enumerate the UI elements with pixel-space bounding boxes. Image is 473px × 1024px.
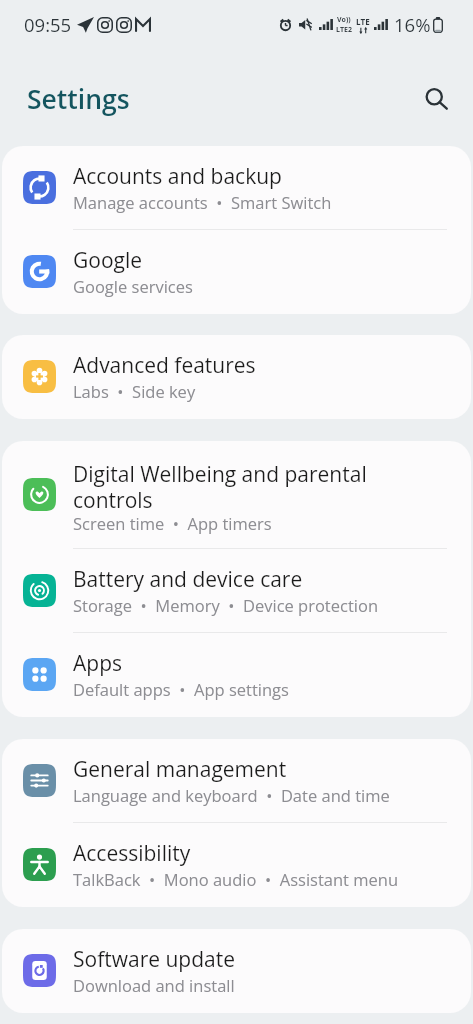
staticText: Download and install — [73, 974, 235, 996]
staticText: 09:55 — [24, 12, 72, 37]
staticText: Vo)) — [337, 15, 351, 25]
button[interactable]: Battery and device care — [2, 549, 471, 633]
staticText: Settings — [27, 81, 130, 117]
staticText: LTE — [356, 16, 370, 27]
button[interactable]: Advanced features — [2, 335, 471, 419]
staticText: Screen time • App timers — [73, 512, 272, 534]
staticText: Apps — [73, 649, 122, 678]
staticText: Default apps • App settings — [73, 678, 289, 700]
button[interactable]: Apps — [2, 633, 471, 717]
staticText: Digital Wellbeing and parental controls — [73, 460, 367, 515]
staticText: General management — [73, 755, 287, 784]
staticText: Google — [73, 246, 143, 275]
staticText: Battery and device care — [73, 565, 303, 594]
button[interactable]: Accounts and backup — [2, 146, 471, 230]
staticText: Manage accounts • Smart Switch — [73, 191, 332, 213]
staticText: Labs • Side key — [73, 380, 196, 402]
staticText: Advanced features — [73, 351, 256, 380]
button[interactable]: Digital Wellbeing and parental controls — [2, 441, 471, 549]
staticText: Software update — [73, 945, 235, 974]
staticText: Accounts and backup — [73, 162, 282, 191]
button[interactable]: Google — [2, 230, 471, 314]
button[interactable]: General management — [2, 739, 471, 823]
staticText: TalkBack • Mono audio • Assistant menu — [73, 868, 399, 890]
staticText: 16% — [394, 12, 431, 37]
staticText: LTE2 — [336, 25, 352, 35]
staticText: Accessibility — [73, 839, 191, 868]
button[interactable]: Software update — [2, 929, 471, 1013]
button[interactable]: Search — [414, 77, 458, 121]
staticText: Storage • Memory • Device protection — [73, 594, 379, 616]
button[interactable]: Accessibility — [2, 823, 471, 907]
staticText: Language and keyboard • Date and time — [73, 784, 390, 806]
staticText: Google services — [73, 275, 193, 297]
